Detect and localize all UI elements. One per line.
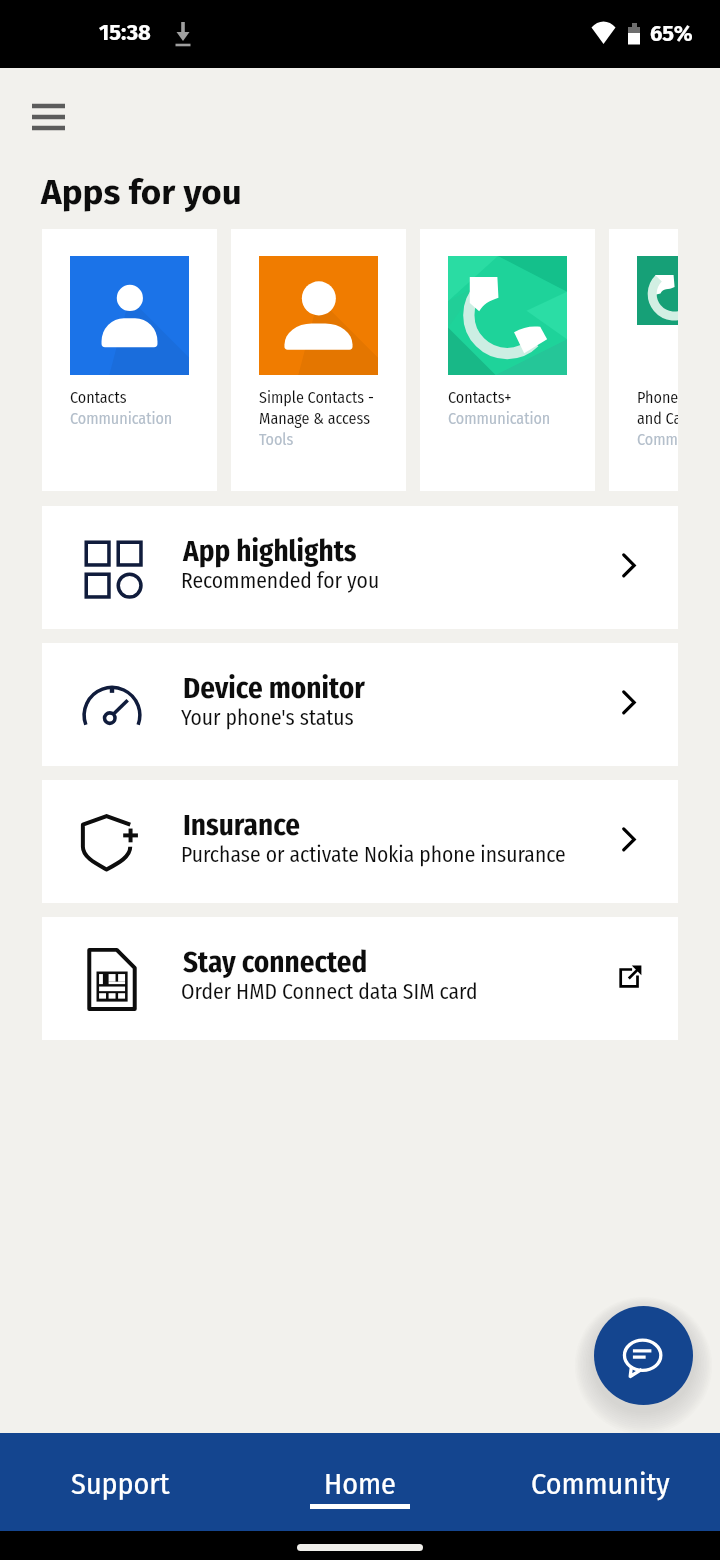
staticText: Recommended for you bbox=[181, 568, 380, 594]
staticText: Tools bbox=[259, 430, 294, 449]
staticText: Your phone's status bbox=[181, 705, 354, 731]
staticText: Community bbox=[531, 1466, 670, 1502]
staticText: Device monitor bbox=[183, 671, 365, 706]
staticText: 15:38 bbox=[99, 19, 151, 45]
staticText: Simple Contacts - Manage & access bbox=[259, 388, 374, 429]
button[interactable]: Stay connected bbox=[42, 917, 678, 1040]
staticText: 65% bbox=[650, 20, 693, 46]
staticText: Order HMD Connect data SIM card bbox=[181, 979, 478, 1005]
staticText: Phone Dialer: Contacts and Call bbox=[637, 388, 678, 429]
button[interactable]: Support bbox=[0, 1433, 240, 1531]
button[interactable]: Contacts+ bbox=[420, 229, 595, 491]
staticText: Purchase or activate Nokia phone insuran… bbox=[181, 842, 566, 868]
button[interactable]: Chat support bbox=[594, 1306, 693, 1405]
staticText: Apps for you bbox=[41, 171, 242, 213]
button[interactable]: Phone Dialer: Contacts and Call bbox=[609, 229, 678, 491]
button[interactable]: Community bbox=[480, 1433, 720, 1531]
staticText: Contacts bbox=[70, 388, 127, 407]
staticText: Communication bbox=[637, 430, 678, 449]
staticText: Stay connected bbox=[183, 945, 368, 980]
staticText: Insurance bbox=[183, 808, 300, 843]
button[interactable]: Home bbox=[240, 1433, 480, 1531]
button[interactable]: Device monitor bbox=[42, 643, 678, 766]
button[interactable]: Insurance bbox=[42, 780, 678, 903]
button[interactable]: Simple Contacts - Manage & access bbox=[231, 229, 406, 491]
staticText: Contacts+ bbox=[448, 388, 512, 407]
button[interactable]: Open navigation menu bbox=[14, 86, 84, 138]
button[interactable]: App highlights bbox=[42, 506, 678, 629]
staticText: Communication bbox=[448, 409, 551, 428]
staticText: Support bbox=[71, 1466, 170, 1502]
staticText: Home bbox=[324, 1466, 396, 1502]
staticText: Communication bbox=[70, 409, 173, 428]
button[interactable]: Contacts bbox=[42, 229, 217, 491]
staticText: App highlights bbox=[183, 534, 357, 569]
